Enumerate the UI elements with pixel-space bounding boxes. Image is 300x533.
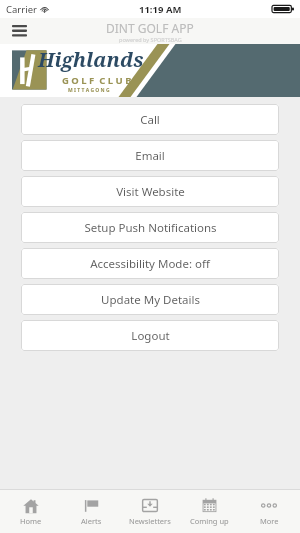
- staticText: Setup Push Notifications: [84, 220, 217, 236]
- staticText: Coming up: [190, 516, 229, 526]
- button[interactable]: Visit Website: [21, 176, 279, 207]
- staticText: G O L F C L U B: [62, 74, 132, 87]
- button[interactable]: Email: [21, 140, 279, 171]
- staticText: Logout: [131, 328, 170, 344]
- staticText: Newsletters: [129, 516, 171, 526]
- button[interactable]: Alerts: [63, 489, 119, 533]
- staticText: 11:19 AM: [139, 3, 182, 16]
- staticText: Call: [140, 112, 160, 128]
- button[interactable]: Update My Details: [21, 284, 279, 315]
- staticText: Update My Details: [101, 292, 200, 308]
- staticText: powered by SPORTSBAG: [119, 36, 182, 43]
- staticText: Carrier: [6, 3, 37, 16]
- button[interactable]: Logout: [21, 320, 279, 351]
- staticText: Home: [20, 516, 42, 526]
- staticText: Alerts: [81, 516, 102, 526]
- button[interactable]: Call: [21, 104, 279, 135]
- button[interactable]: Coming up: [181, 489, 237, 533]
- button[interactable]: Accessibility Mode: off: [21, 248, 279, 279]
- button[interactable]: More: [241, 489, 297, 533]
- staticText: Highlands: [38, 46, 144, 73]
- staticText: Accessibility Mode: off: [90, 256, 210, 272]
- button[interactable]: Newsletters: [122, 489, 178, 533]
- staticText: Email: [135, 148, 165, 164]
- staticText: M I T T A G O N G: [68, 87, 110, 94]
- staticText: DINT GOLF APP: [106, 20, 194, 36]
- staticText: Visit Website: [116, 184, 185, 200]
- button[interactable]: Menu: [6, 18, 32, 44]
- button[interactable]: Setup Push Notifications: [21, 212, 279, 243]
- button[interactable]: Home: [3, 489, 59, 533]
- staticText: More: [260, 516, 279, 526]
